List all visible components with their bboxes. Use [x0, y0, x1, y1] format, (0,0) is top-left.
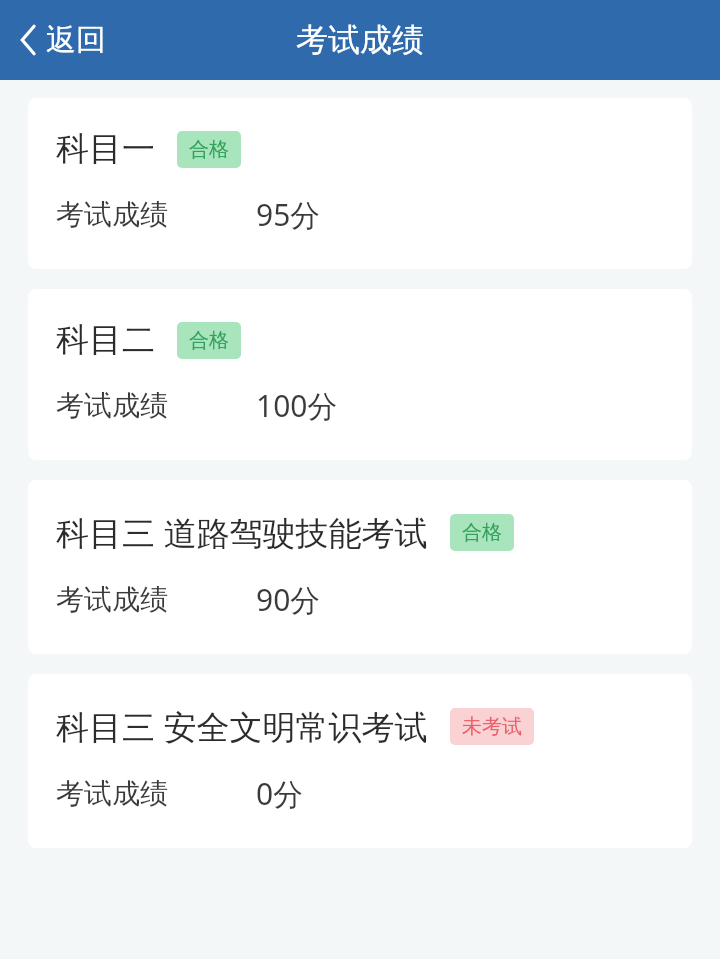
staticText: 考试成绩	[56, 582, 168, 617]
staticText: 科目二	[56, 319, 155, 361]
staticText: 考试成绩	[56, 197, 168, 232]
staticText: 合格	[462, 520, 502, 545]
button[interactable]: 科目二	[28, 289, 692, 460]
staticText: 100分	[256, 385, 338, 426]
staticText: 科目一	[56, 128, 155, 170]
button[interactable]: 科目一	[28, 98, 692, 269]
button[interactable]: Back	[12, 13, 114, 67]
button[interactable]: 科目三 道路驾驶技能考试	[28, 480, 692, 654]
staticText: 0分	[256, 773, 304, 814]
staticText: 考试成绩	[56, 776, 168, 811]
staticText: 未考试	[462, 714, 522, 739]
staticText: 返回	[46, 21, 106, 59]
staticText: 95分	[256, 194, 321, 235]
staticText: 90分	[256, 579, 321, 620]
staticText: 科目三 安全文明常识考试	[56, 704, 428, 749]
staticText: 考试成绩	[296, 20, 424, 60]
staticText: 合格	[189, 137, 229, 162]
button[interactable]: 科目三 安全文明常识考试	[28, 674, 692, 848]
staticText: 合格	[189, 328, 229, 353]
staticText: 科目三 道路驾驶技能考试	[56, 510, 428, 555]
staticText: 考试成绩	[56, 388, 168, 423]
